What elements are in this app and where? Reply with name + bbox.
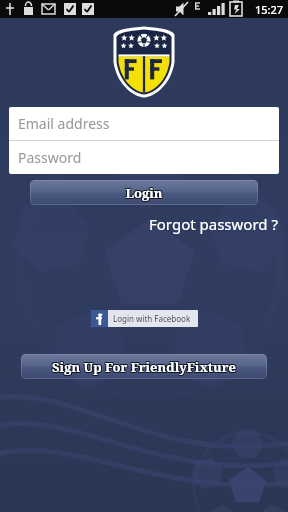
staticText: Login <box>124 183 162 201</box>
staticText: Login <box>124 185 162 203</box>
staticText: Sign Up For FriendlyFixture <box>53 357 237 375</box>
button[interactable]: Sign Up For FriendlyFixture <box>21 354 267 379</box>
staticText: Login <box>125 184 163 202</box>
staticText: Email address <box>18 114 110 133</box>
staticText: Login <box>126 184 164 202</box>
staticText: Login <box>124 184 162 202</box>
staticText: 15:27 <box>255 2 284 17</box>
staticText: Sign Up For FriendlyFixture <box>52 358 236 376</box>
staticText: Sign Up For FriendlyFixture <box>53 359 237 377</box>
staticText: Sign Up For FriendlyFixture <box>51 359 235 377</box>
staticText: Sign Up For FriendlyFixture <box>51 357 235 375</box>
staticText: Forgot password ? <box>149 214 278 234</box>
button[interactable]: Login <box>30 180 258 205</box>
staticText: Login <box>126 185 164 203</box>
button[interactable]: Login with Facebook <box>91 310 198 327</box>
staticText: Sign Up For FriendlyFixture <box>51 358 235 376</box>
staticText: Login <box>125 185 163 203</box>
button[interactable]: Forgot password ? <box>0 214 278 234</box>
other: FriendlyFixture logo <box>113 26 175 98</box>
staticText: Login <box>125 183 163 201</box>
button[interactable]: Email address <box>9 107 279 140</box>
staticText: Sign Up For FriendlyFixture <box>52 359 236 377</box>
staticText: Password <box>18 148 82 167</box>
staticText: Login <box>126 183 164 201</box>
staticText: Sign Up For FriendlyFixture <box>53 358 237 376</box>
staticText: Sign Up For FriendlyFixture <box>52 357 236 375</box>
staticText: Login with Facebook <box>113 313 191 324</box>
button[interactable]: Password <box>9 141 279 174</box>
